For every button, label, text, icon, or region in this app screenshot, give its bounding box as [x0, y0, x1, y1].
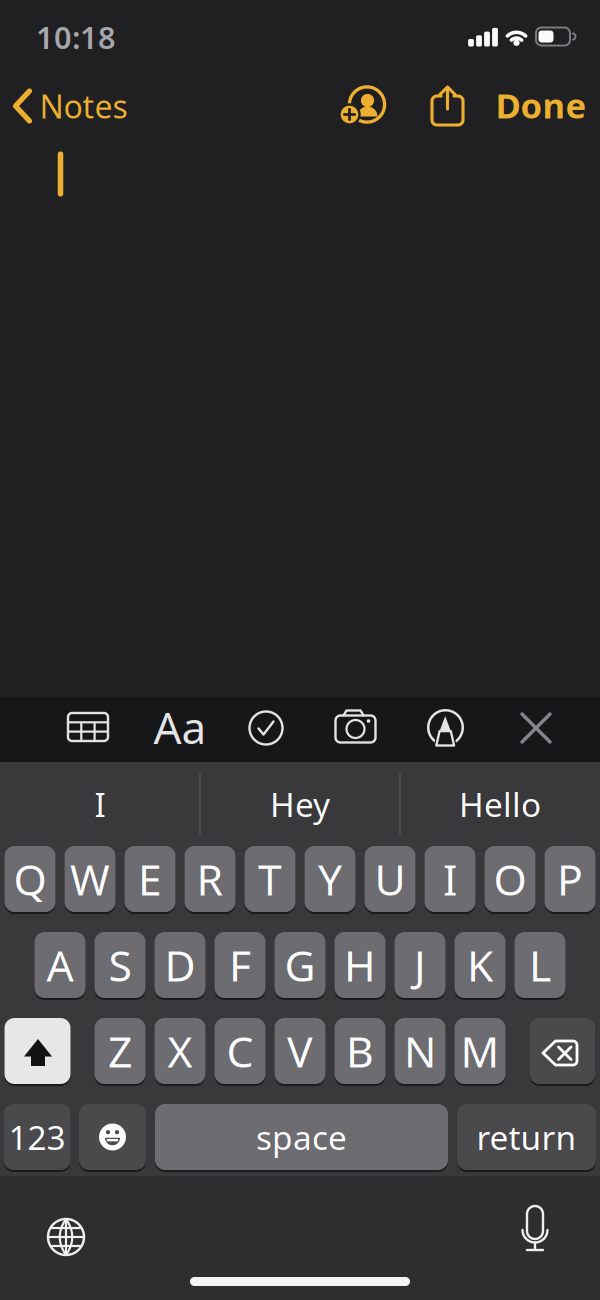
button[interactable]: Shift: [4, 1018, 70, 1086]
button[interactable]: V: [274, 1018, 325, 1086]
button[interactable]: Checklist: [247, 709, 285, 747]
button[interactable]: H: [334, 932, 385, 1000]
button[interactable]: N: [394, 1018, 445, 1086]
button[interactable]: E: [124, 846, 175, 914]
button[interactable]: Dictation: [518, 1205, 552, 1257]
button[interactable]: Insert table: [66, 710, 110, 744]
staticText: L: [529, 937, 551, 993]
staticText: X: [167, 1023, 192, 1079]
staticText: space: [256, 1115, 347, 1159]
staticText: A: [46, 937, 73, 993]
button[interactable]: U: [364, 846, 415, 914]
staticText: B: [346, 1023, 374, 1079]
button[interactable]: D: [154, 932, 205, 1000]
button[interactable]: Back: [7, 84, 133, 128]
staticText: H: [344, 937, 376, 993]
button[interactable]: F: [214, 932, 265, 1000]
button[interactable]: return: [457, 1104, 596, 1172]
button[interactable]: Done: [486, 83, 596, 127]
button[interactable]: Q: [4, 846, 55, 914]
staticText: N: [404, 1023, 436, 1079]
staticText: J: [414, 937, 426, 993]
button[interactable]: A: [34, 932, 85, 1000]
staticText: W: [70, 851, 110, 907]
button[interactable]: I: [5, 773, 195, 835]
button[interactable]: L: [514, 932, 565, 1000]
button[interactable]: Camera: [333, 707, 377, 743]
staticText: M: [460, 1023, 499, 1079]
button[interactable]: Hello: [405, 773, 595, 835]
button[interactable]: S: [94, 932, 145, 1000]
button[interactable]: T: [244, 846, 295, 914]
staticText: O: [493, 851, 526, 907]
staticText: I: [94, 782, 105, 826]
button[interactable]: G: [274, 932, 325, 1000]
staticText: S: [108, 937, 131, 993]
button[interactable]: M: [454, 1018, 505, 1086]
button[interactable]: R: [184, 846, 235, 914]
button[interactable]: P: [544, 846, 595, 914]
button[interactable]: J: [394, 932, 445, 1000]
staticText: 10:18: [36, 17, 116, 57]
staticText: U: [374, 851, 405, 907]
button[interactable]: 123: [3, 1104, 70, 1172]
button[interactable]: C: [214, 1018, 265, 1086]
button[interactable]: Dismiss keyboard: [520, 712, 552, 744]
staticText: E: [138, 851, 162, 907]
staticText: Done: [495, 82, 586, 128]
staticText: return: [476, 1115, 576, 1159]
button[interactable]: B: [334, 1018, 385, 1086]
button[interactable]: Emoji: [79, 1104, 146, 1172]
button[interactable]: space: [155, 1104, 448, 1172]
button[interactable]: Y: [304, 846, 355, 914]
staticText: R: [196, 851, 223, 907]
button[interactable]: Markup: [426, 708, 464, 746]
button[interactable]: Share: [425, 73, 469, 127]
staticText: Notes: [39, 85, 127, 127]
button[interactable]: Next keyboard: [44, 1215, 88, 1259]
button[interactable]: Hey: [205, 773, 395, 835]
staticText: D: [164, 937, 195, 993]
staticText: C: [226, 1023, 253, 1079]
staticText: F: [229, 937, 251, 993]
button[interactable]: O: [484, 846, 535, 914]
button[interactable]: K: [454, 932, 505, 1000]
staticText: K: [467, 937, 493, 993]
button[interactable]: Delete: [529, 1018, 595, 1086]
button[interactable]: Formatting: [148, 707, 212, 747]
staticText: Y: [318, 851, 342, 907]
button[interactable]: Z: [94, 1018, 145, 1086]
staticText: T: [258, 851, 282, 907]
staticText: 123: [8, 1115, 65, 1159]
button[interactable]: I: [424, 846, 475, 914]
staticText: P: [557, 851, 583, 907]
staticText: Z: [108, 1023, 132, 1079]
staticText: V: [287, 1023, 313, 1079]
staticText: Q: [13, 851, 46, 907]
staticText: Hey: [270, 782, 330, 826]
button[interactable]: X: [154, 1018, 205, 1086]
button[interactable]: Add people: [337, 84, 389, 132]
staticText: Aa: [153, 698, 206, 756]
staticText: G: [284, 937, 315, 993]
button[interactable]: W: [64, 846, 115, 914]
staticText: Hello: [459, 782, 541, 826]
staticText: I: [443, 851, 457, 907]
